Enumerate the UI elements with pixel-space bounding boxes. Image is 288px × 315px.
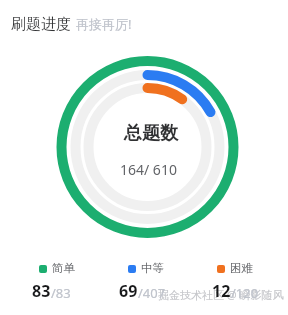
staticText: /83 [51,284,71,302]
staticText: 掘金技术社区 @ 瞬影随风 [158,287,284,302]
button[interactable] [31,260,95,300]
staticText: 83 [32,280,51,302]
button[interactable] [46,46,250,250]
button[interactable] [6,10,138,36]
staticText: /120 [231,284,259,302]
staticText: 164/ 610 [120,160,177,179]
button[interactable] [120,260,184,300]
staticText: 再接再厉! [76,15,132,33]
staticText: 12 [212,280,231,302]
staticText: 简单 [52,261,75,275]
button[interactable] [209,260,273,300]
staticText: 中等 [141,261,164,275]
staticText: 困难 [230,261,253,275]
staticText: /407 [138,284,166,302]
staticText: 刷题进度 [11,15,71,34]
staticText: 总题数 [124,122,178,145]
staticText: 69 [119,280,138,302]
